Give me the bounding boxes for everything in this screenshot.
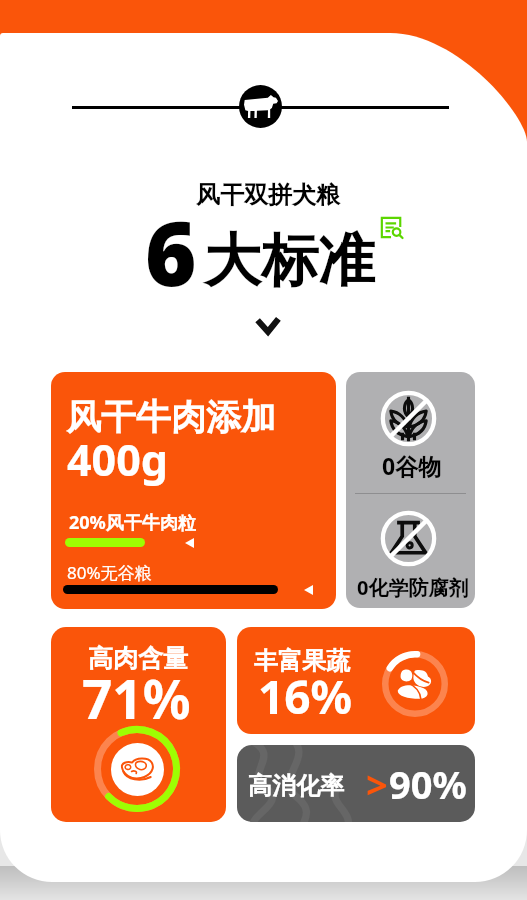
staticText: 6	[145, 192, 197, 312]
button[interactable]	[51, 372, 336, 609]
staticText: 0谷物	[382, 450, 442, 481]
staticText: 0化学防腐剂	[357, 574, 469, 601]
staticText: 400g	[67, 430, 168, 489]
staticText: 71%	[82, 662, 191, 734]
button[interactable]	[346, 372, 475, 608]
staticText: 90%	[389, 758, 467, 810]
staticText: >	[366, 758, 388, 810]
other: No chemical preservatives	[380, 510, 437, 567]
staticText: 风干牛肉添加	[66, 395, 276, 439]
button[interactable]	[237, 627, 475, 734]
other: Lab report	[380, 216, 403, 239]
staticText: 80%无谷粮	[67, 561, 152, 584]
staticText: 丰富果蔬	[254, 646, 350, 676]
other: Scroll down	[255, 317, 281, 335]
staticText: 20%风干牛肉粒	[69, 510, 196, 535]
staticText: 高消化率	[248, 771, 344, 801]
staticText: 16%	[258, 665, 353, 728]
staticText: 大标准	[204, 225, 375, 297]
staticText: 高肉含量	[88, 643, 188, 674]
other: Beef badge	[239, 85, 282, 128]
button[interactable]	[237, 745, 475, 822]
staticText: 风干双拼犬粮	[196, 180, 340, 210]
button[interactable]	[51, 627, 226, 822]
other: Grain free	[380, 390, 437, 447]
